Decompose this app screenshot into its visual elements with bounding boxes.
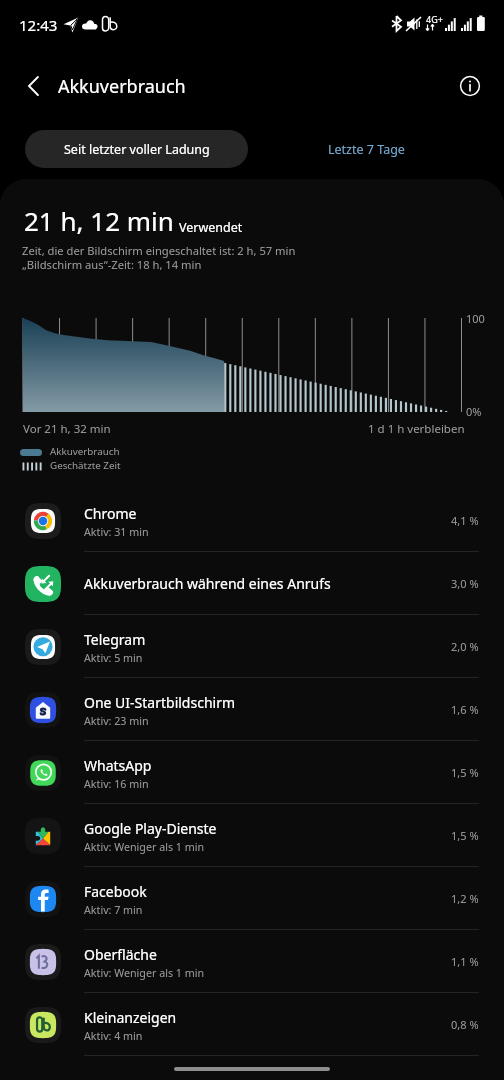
staticText: Verwendet <box>179 219 243 236</box>
staticText: Aktiv: 31 min <box>84 525 149 540</box>
button[interactable]: Letzte 7 Tage <box>308 130 424 168</box>
staticText: Aktiv: 23 min <box>84 714 149 729</box>
staticText: „Bildschirm aus“-Zeit: 18 h, 14 min <box>22 257 202 272</box>
staticText: Facebook <box>84 882 147 901</box>
staticText: 1 d 1 h verbleiben <box>368 421 465 437</box>
staticText: Google Play-Dienste <box>84 819 217 838</box>
staticText: One UI-Startbildschirm <box>84 693 236 712</box>
staticText: 4,1 % <box>451 513 479 528</box>
button[interactable]: One UI-Startbildschirm <box>0 678 504 741</box>
staticText: 1,5 % <box>451 828 479 843</box>
staticText: 0,8 % <box>451 1017 479 1032</box>
staticText: Akkuverbrauch <box>50 445 120 458</box>
button[interactable]: Google Play-Dienste <box>0 804 504 867</box>
staticText: 2,0 % <box>451 639 479 654</box>
button[interactable]: Seit letzter voller Ladung <box>25 130 248 168</box>
staticText: Seit letzter voller Ladung <box>64 141 210 158</box>
staticText: Aktiv: 4 min <box>84 1029 143 1044</box>
staticText: Letzte 7 Tage <box>328 141 405 158</box>
staticText: 1,2 % <box>451 891 479 906</box>
staticText: 1,5 % <box>451 765 479 780</box>
staticText: 3,0 % <box>451 576 479 591</box>
staticText: Akkuverbrauch <box>58 74 186 99</box>
staticText: Oberfläche <box>84 945 157 964</box>
staticText: Akkuverbrauch während eines Anrufs <box>84 574 331 593</box>
button[interactable]: Facebook <box>0 867 504 930</box>
button[interactable]: Chrome <box>0 489 504 552</box>
staticText: 4G+ <box>426 13 443 25</box>
staticText: Zeit, die der Bildschirm eingeschaltet i… <box>22 243 296 258</box>
button[interactable]: Telegram <box>0 615 504 678</box>
button[interactable]: Akkuverbrauch während eines Anrufs <box>0 552 504 615</box>
staticText: 12:43 <box>19 15 58 35</box>
staticText: 1,1 % <box>451 954 479 969</box>
staticText: Aktiv: 5 min <box>84 651 143 666</box>
staticText: Aktiv: Weniger als 1 min <box>84 840 205 855</box>
staticText: Kleinanzeigen <box>84 1008 177 1027</box>
button[interactable]: Zurück <box>17 69 51 103</box>
staticText: Aktiv: 7 min <box>84 903 143 918</box>
button[interactable]: WhatsApp <box>0 741 504 804</box>
button[interactable]: Kleinanzeigen <box>0 993 504 1056</box>
staticText: 1,6 % <box>451 702 479 717</box>
staticText: Geschätzte Zeit <box>50 459 121 472</box>
staticText: Telegram <box>84 630 146 649</box>
staticText: 0% <box>466 404 482 419</box>
button[interactable]: Informationen <box>456 72 484 100</box>
staticText: 21 h, 12 min <box>24 203 174 238</box>
button[interactable]: Oberfläche <box>0 930 504 993</box>
staticText: Aktiv: Weniger als 1 min <box>84 966 205 981</box>
staticText: 100 <box>466 311 485 326</box>
staticText: Chrome <box>84 504 137 523</box>
staticText: Aktiv: 16 min <box>84 777 149 792</box>
staticText: Vor 21 h, 32 min <box>23 421 111 437</box>
staticText: WhatsApp <box>84 756 152 775</box>
